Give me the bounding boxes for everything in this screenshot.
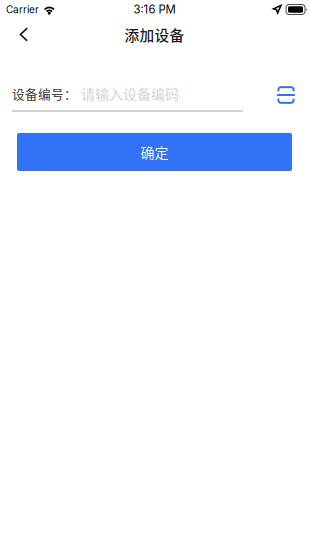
button[interactable]: 确定 bbox=[17, 133, 292, 171]
staticText: 添加设备 bbox=[124, 24, 184, 45]
button[interactable]: Scan device code bbox=[272, 83, 300, 111]
staticText: 请输入设备编码 bbox=[81, 83, 179, 104]
staticText: Carrier bbox=[6, 3, 39, 16]
button[interactable]: Back bbox=[0, 18, 45, 51]
staticText: 确定 bbox=[140, 142, 168, 162]
staticText: 3:16 PM bbox=[133, 3, 175, 16]
staticText: 设备编号： bbox=[12, 84, 77, 103]
